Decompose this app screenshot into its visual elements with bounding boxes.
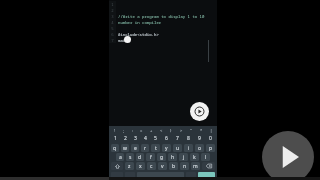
button[interactable]: Symbols xyxy=(111,172,123,178)
button[interactable]: ; xyxy=(119,126,128,134)
staticText: c xyxy=(150,163,153,170)
button[interactable]: q xyxy=(111,144,119,152)
staticText: z xyxy=(128,163,131,170)
button[interactable]: v xyxy=(158,162,167,170)
staticText: 1 xyxy=(111,2,114,7)
staticText: " xyxy=(190,128,192,133)
staticText: a xyxy=(119,154,122,161)
button[interactable]: Play xyxy=(190,102,209,121)
button[interactable]: f xyxy=(146,153,155,161)
staticText: v xyxy=(161,163,164,170)
button[interactable]: Text cursor handle xyxy=(124,36,131,43)
staticText: = xyxy=(140,128,143,133)
button[interactable]: 0 xyxy=(205,135,216,142)
staticText: 7 xyxy=(111,38,114,43)
button[interactable]: y xyxy=(162,144,171,152)
button[interactable]: " xyxy=(186,126,196,134)
button[interactable]: Play video xyxy=(262,131,314,180)
button[interactable]: n xyxy=(180,162,189,170)
button[interactable]: Period xyxy=(186,172,196,178)
button[interactable]: 8 xyxy=(183,135,194,142)
button[interactable]: p xyxy=(206,144,215,152)
button[interactable]: t xyxy=(151,144,160,152)
button[interactable]: w xyxy=(121,144,129,152)
staticText: s xyxy=(129,154,132,161)
button[interactable]: | xyxy=(206,126,216,134)
button[interactable]: 4 xyxy=(140,135,150,142)
staticText: * xyxy=(200,128,203,133)
button[interactable]: 5 xyxy=(150,135,161,142)
staticText: ! xyxy=(114,128,116,133)
button[interactable]: 3 xyxy=(130,135,140,142)
staticText: 8 xyxy=(187,135,190,142)
staticText: m xyxy=(193,163,198,170)
button[interactable]: c xyxy=(147,162,156,170)
button[interactable]: j xyxy=(179,153,188,161)
staticText: t xyxy=(155,145,157,152)
button[interactable]: + xyxy=(146,126,156,134)
staticText: 4 xyxy=(111,20,114,25)
button[interactable]: 6 xyxy=(161,135,172,142)
staticText: p xyxy=(209,145,213,152)
button[interactable]: < xyxy=(156,126,166,134)
button[interactable]: a xyxy=(116,153,124,161)
button[interactable]: m xyxy=(191,162,200,170)
staticText: 6 xyxy=(111,32,114,37)
staticText: f xyxy=(150,154,152,161)
button[interactable]: x xyxy=(136,162,145,170)
button[interactable]: 7 xyxy=(172,135,183,142)
staticText: #include<stdio.h> xyxy=(118,32,159,37)
staticText: r xyxy=(144,145,147,152)
button[interactable]: b xyxy=(169,162,178,170)
staticText: 4 xyxy=(144,135,147,142)
button[interactable]: > xyxy=(176,126,186,134)
button[interactable]: l xyxy=(201,153,210,161)
button[interactable]: d xyxy=(136,153,144,161)
staticText: ) xyxy=(170,128,172,133)
button[interactable]: ) xyxy=(166,126,176,134)
button[interactable]: 1 xyxy=(110,135,120,142)
button[interactable]: e xyxy=(131,144,139,152)
staticText: 0 xyxy=(209,135,212,142)
staticText: | xyxy=(210,128,213,133)
button[interactable]: g xyxy=(157,153,166,161)
staticText: i xyxy=(188,145,190,152)
button[interactable]: : xyxy=(128,126,137,134)
button[interactable]: s xyxy=(126,153,134,161)
staticText: b xyxy=(172,163,176,170)
staticText: 1 xyxy=(114,135,117,142)
button[interactable]: r xyxy=(141,144,149,152)
staticText: 6 xyxy=(165,135,168,142)
staticText: 3 xyxy=(134,135,137,142)
staticText: : xyxy=(132,128,134,133)
button[interactable]: Backspace xyxy=(202,162,215,170)
staticText: ; xyxy=(123,128,125,133)
staticText: j xyxy=(183,154,185,161)
button[interactable]: i xyxy=(184,144,193,152)
button[interactable]: = xyxy=(137,126,146,134)
button[interactable]: z xyxy=(125,162,134,170)
button[interactable]: o xyxy=(195,144,204,152)
staticText: 2 xyxy=(124,135,127,142)
button[interactable]: Enter xyxy=(198,172,215,178)
button[interactable]: Comma xyxy=(125,172,135,178)
staticText: g xyxy=(160,154,164,161)
staticText: 3 xyxy=(111,14,114,19)
button[interactable]: ! xyxy=(110,126,119,134)
staticText: k xyxy=(193,154,196,161)
button[interactable]: 9 xyxy=(194,135,205,142)
staticText: 5 xyxy=(154,135,157,142)
button[interactable]: k xyxy=(190,153,199,161)
button[interactable]: Space xyxy=(137,172,184,178)
staticText: y xyxy=(165,145,168,152)
staticText: 5 xyxy=(111,26,114,31)
staticText: //Write a program to display 1 to 10 xyxy=(118,14,205,19)
button[interactable]: Shift xyxy=(111,162,123,170)
button[interactable]: u xyxy=(173,144,182,152)
staticText: mai xyxy=(118,38,126,43)
button[interactable]: 2 xyxy=(120,135,130,142)
button[interactable]: * xyxy=(196,126,206,134)
button[interactable]: h xyxy=(168,153,177,161)
staticText: q xyxy=(113,145,117,152)
staticText: + xyxy=(150,128,153,133)
